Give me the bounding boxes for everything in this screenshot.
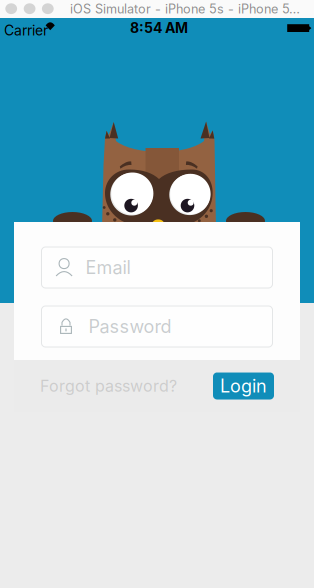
staticText: iOS Simulator - iPhone 5s - iPhone 5… bbox=[70, 1, 300, 17]
button[interactable]: Login bbox=[213, 372, 274, 399]
staticText: 8:54 AM bbox=[130, 19, 188, 36]
staticText: Login bbox=[220, 375, 267, 397]
staticText: Email bbox=[85, 257, 130, 278]
staticText: Password bbox=[88, 316, 171, 337]
button[interactable]: Password bbox=[41, 306, 272, 347]
button[interactable]: Forgot password? bbox=[40, 376, 177, 396]
button[interactable]: Email bbox=[41, 247, 272, 288]
staticText: Carrier bbox=[4, 22, 48, 39]
staticText: Forgot password? bbox=[40, 376, 177, 396]
